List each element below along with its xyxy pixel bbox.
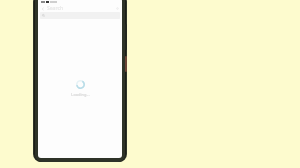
button[interactable]: Back [41, 7, 45, 11]
button[interactable]: More options [116, 7, 119, 10]
staticText: Loading... [71, 92, 90, 97]
staticText: Search [47, 5, 64, 12]
other: Power button [125, 56, 127, 72]
